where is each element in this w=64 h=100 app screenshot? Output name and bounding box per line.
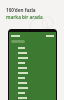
button[interactable] bbox=[9, 60, 56, 65]
button[interactable] bbox=[9, 75, 56, 80]
staticText: 100'den fazla bbox=[6, 7, 36, 13]
button[interactable] bbox=[9, 50, 56, 55]
button[interactable] bbox=[9, 90, 56, 95]
button[interactable] bbox=[9, 85, 56, 90]
button[interactable] bbox=[11, 40, 25, 43]
button[interactable] bbox=[9, 65, 56, 70]
button[interactable] bbox=[9, 70, 56, 75]
button[interactable] bbox=[9, 80, 56, 85]
button[interactable] bbox=[9, 45, 56, 50]
staticText: marka bir arada bbox=[6, 14, 43, 20]
button[interactable] bbox=[9, 55, 56, 60]
button[interactable] bbox=[9, 95, 56, 100]
